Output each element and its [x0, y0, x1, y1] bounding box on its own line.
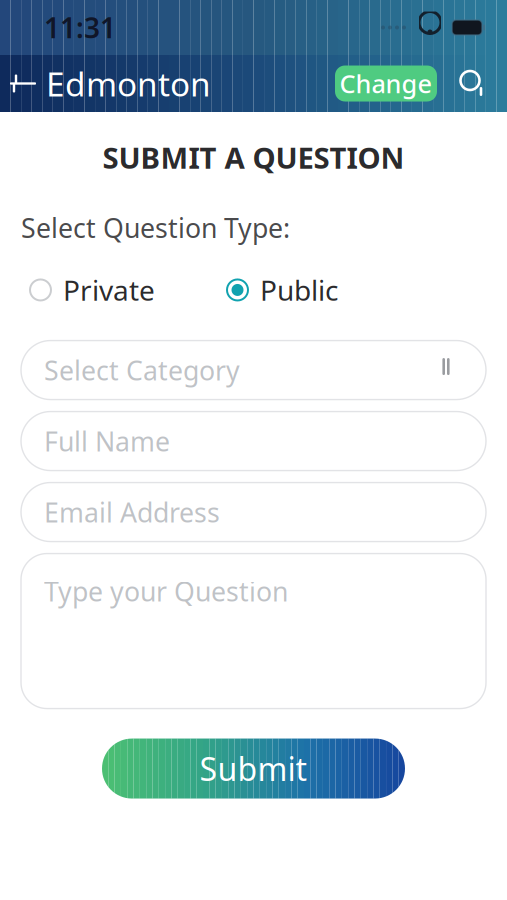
button[interactable]: Type your Question — [21, 553, 486, 708]
button[interactable]: Search — [451, 55, 495, 112]
staticText: Change — [339, 67, 432, 100]
staticText: Email Address — [44, 494, 220, 530]
button[interactable]: Public — [227, 267, 338, 313]
button[interactable]: Email Address — [21, 482, 486, 541]
staticText: Type your Question — [44, 573, 288, 609]
button[interactable]: Full Name — [21, 411, 486, 470]
button[interactable]: Back — [0, 55, 46, 112]
staticText: 11:31 — [44, 9, 116, 46]
staticText: SUBMIT A QUESTION — [102, 138, 404, 177]
button[interactable]: Select Category — [21, 340, 486, 399]
button[interactable]: Change — [335, 65, 437, 101]
button[interactable]: Private — [30, 267, 155, 313]
staticText: Edmonton — [46, 61, 211, 106]
staticText: Private — [63, 271, 155, 309]
button[interactable]: Submit — [102, 738, 405, 798]
staticText: Public — [260, 271, 338, 309]
staticText: Submit — [199, 747, 307, 790]
staticText: Full Name — [44, 423, 170, 459]
staticText: Select Question Type: — [21, 210, 290, 245]
staticText: Select Category — [44, 352, 240, 388]
